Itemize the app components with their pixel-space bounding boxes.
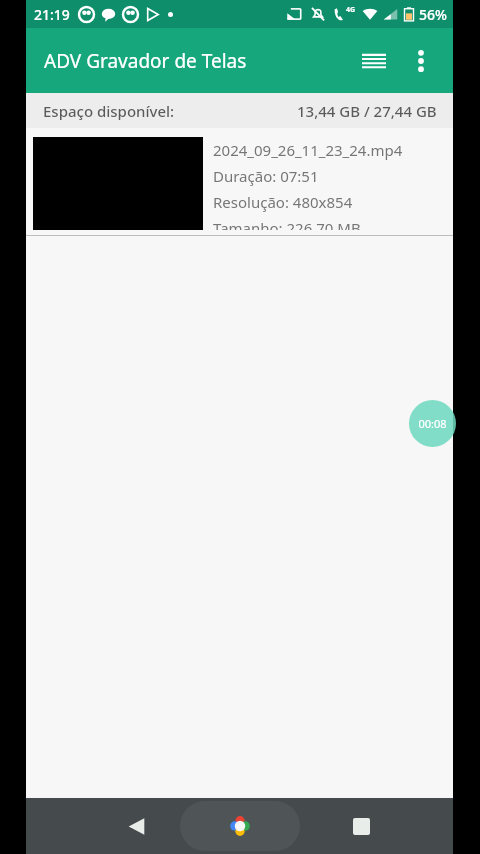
button[interactable]: More options — [399, 39, 443, 83]
button[interactable]: Assistant — [180, 801, 300, 851]
staticText: Resolução: 480x854 — [213, 192, 353, 212]
button[interactable]: 2024_09_26_11_23_24.mp4 — [26, 128, 453, 235]
staticText: 2024_09_26_11_23_24.mp4 — [213, 140, 403, 160]
button[interactable]: Menu — [351, 38, 397, 84]
staticText: Espaço disponível: — [43, 101, 175, 121]
staticText: 13,44 GB / 27,44 GB — [297, 101, 437, 121]
button[interactable]: Back — [112, 802, 160, 850]
button[interactable]: Recent apps — [337, 802, 385, 850]
button[interactable]: Recording timer — [409, 400, 456, 447]
staticText: 4G — [346, 5, 356, 15]
staticText: 56% — [419, 5, 447, 24]
staticText: Duração: 07:51 — [213, 166, 319, 186]
staticText: Tamanho: 226,70 MB — [213, 218, 361, 230]
staticText: 00:08 — [418, 416, 447, 431]
staticText: 21:19 — [34, 5, 70, 24]
staticText: ADV Gravador de Telas — [44, 48, 247, 74]
